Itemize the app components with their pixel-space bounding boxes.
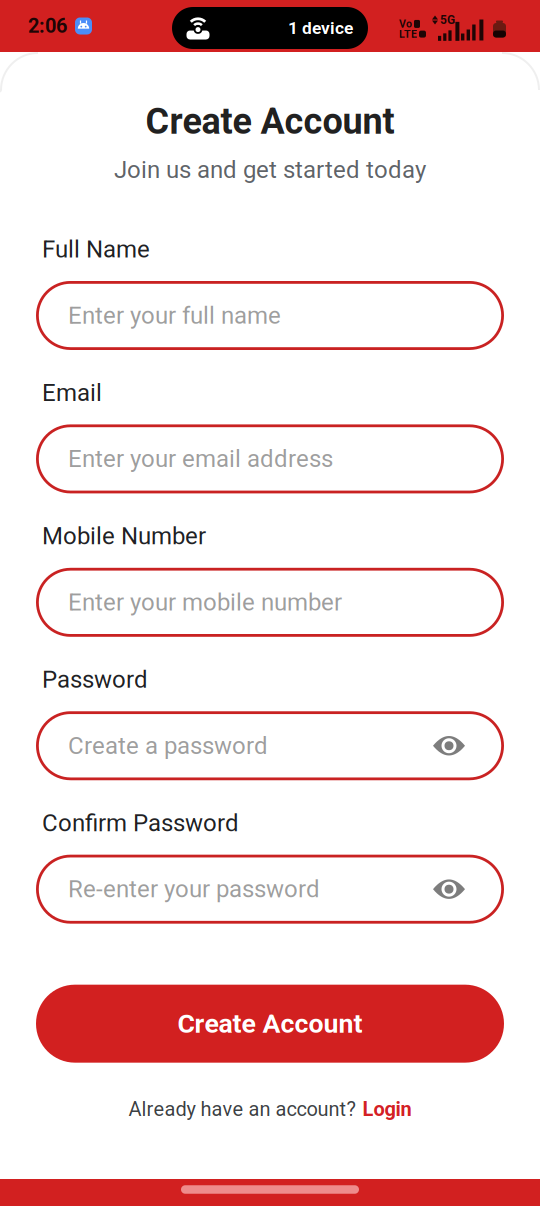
staticText: Login: [362, 1098, 411, 1121]
staticText: 1 device: [288, 18, 353, 38]
staticText: Re-enter your password: [68, 875, 320, 903]
staticText: LTE: [399, 28, 417, 40]
staticText: Full Name: [42, 236, 150, 263]
button[interactable]: Show password: [433, 878, 465, 900]
button[interactable]: 1 device connected: [172, 7, 368, 49]
staticText: Create a password: [68, 732, 268, 759]
button[interactable]: Login: [362, 1098, 411, 1121]
staticText: Enter your full name: [68, 302, 281, 329]
button[interactable]: Enter your mobile number: [36, 568, 504, 637]
button[interactable]: Enter your email address: [36, 424, 504, 493]
staticText: Enter your mobile number: [68, 589, 342, 616]
staticText: Create Account: [145, 101, 394, 142]
staticText: Enter your email address: [68, 445, 333, 473]
button[interactable]: Re-enter your password: [36, 855, 504, 924]
staticText: Email: [42, 379, 102, 406]
staticText: Join us and get started today: [114, 156, 426, 183]
button[interactable]: Show password: [433, 735, 465, 757]
staticText: Mobile Number: [42, 522, 206, 550]
button[interactable]: Enter your full name: [36, 281, 504, 350]
staticText: Confirm Password: [42, 809, 239, 837]
staticText: Password: [42, 666, 148, 693]
staticText: Vo: [399, 18, 412, 30]
button[interactable]: Create Account: [36, 985, 504, 1063]
staticText: 5G: [440, 13, 455, 27]
staticText: Create Account: [177, 1008, 362, 1039]
button[interactable]: Create a password: [36, 711, 504, 780]
staticText: Already have an account?: [128, 1098, 355, 1121]
staticText: 2:06: [28, 15, 67, 37]
